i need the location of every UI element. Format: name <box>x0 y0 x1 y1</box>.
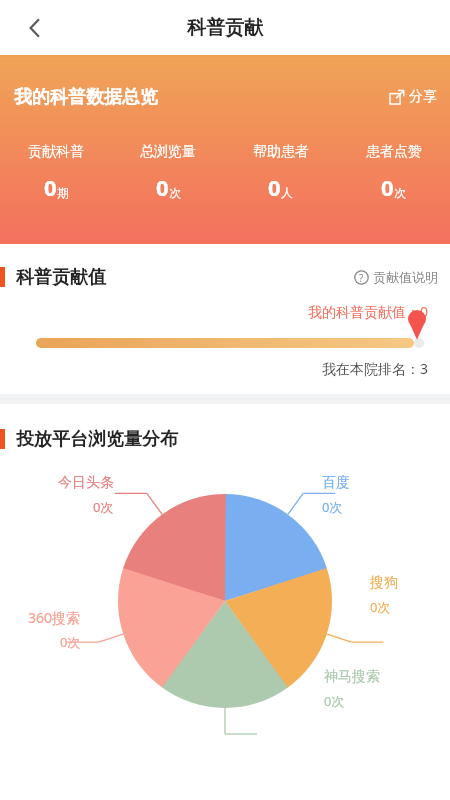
staticText: 0次 <box>322 498 343 516</box>
staticText: 0 <box>156 172 169 202</box>
staticText: 0次 <box>93 498 114 516</box>
staticText: 0次 <box>60 633 81 651</box>
staticText: 我的科普贡献值：0 <box>0 302 428 321</box>
button[interactable]: Back <box>16 9 54 47</box>
staticText: 分享 <box>409 88 437 106</box>
staticText: 科普贡献值 <box>16 266 106 289</box>
staticText: 患者点赞 <box>366 143 422 161</box>
staticText: 百度 <box>322 474 350 492</box>
staticText: 科普贡献 <box>187 16 263 40</box>
staticText: 投放平台浏览量分布 <box>16 428 178 451</box>
staticText: 神马搜索 <box>324 668 380 686</box>
staticText: 我的科普数据总览 <box>14 86 158 109</box>
staticText: 贡献科普 <box>28 143 84 161</box>
staticText: 期 <box>57 185 69 200</box>
staticText: 人 <box>281 185 293 200</box>
staticText: 0 <box>268 172 281 202</box>
staticText: 0次 <box>370 598 391 616</box>
staticText: 贡献值说明 <box>373 269 438 285</box>
staticText: 帮助患者 <box>253 143 309 161</box>
staticText: 搜狗 <box>370 574 398 592</box>
staticText: 今日头条 <box>58 474 114 492</box>
staticText: 次 <box>394 185 406 200</box>
staticText: 0 <box>44 172 57 202</box>
staticText: 我在本院排名：3 <box>0 359 428 378</box>
staticText: 360搜索 <box>28 608 81 627</box>
button[interactable]: 分享 <box>390 88 437 106</box>
button[interactable]: ? <box>354 269 438 285</box>
staticText: 0次 <box>324 692 345 710</box>
staticText: 次 <box>169 185 181 200</box>
staticText: 总浏览量 <box>140 143 196 161</box>
staticText: ? <box>359 271 364 285</box>
staticText: 0 <box>381 172 394 202</box>
